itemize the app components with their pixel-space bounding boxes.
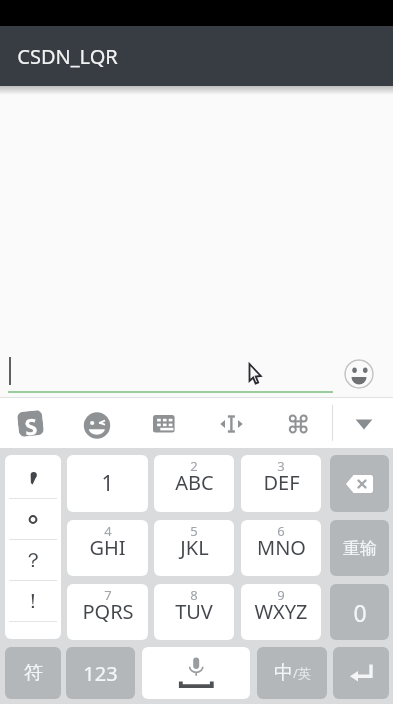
button[interactable]: 9 [241, 584, 321, 640]
staticText: ABC [175, 469, 214, 496]
staticText: JKL [180, 534, 209, 561]
button[interactable] [330, 455, 389, 512]
button[interactable]: 1 [67, 455, 148, 512]
staticText: GHI [89, 534, 126, 561]
button[interactable]: 中 [257, 647, 327, 699]
staticText: WXYZ [254, 598, 308, 625]
button[interactable]: 8 [154, 584, 234, 640]
button[interactable]: 0 [330, 584, 389, 640]
button[interactable] [82, 410, 112, 440]
button[interactable] [142, 647, 250, 699]
button[interactable]: 123 [66, 647, 135, 699]
staticText: 0 [353, 597, 367, 628]
button[interactable]: S [16, 409, 44, 437]
staticText: 8 [190, 586, 198, 604]
staticText: PQRS [82, 598, 134, 625]
button[interactable]: 2 [154, 455, 234, 512]
button[interactable]: 重输 [330, 520, 389, 576]
staticText: 符 [24, 661, 43, 685]
staticText: 中 [274, 661, 293, 685]
staticText: CSDN_LQR [17, 43, 118, 70]
staticText: DEF [263, 469, 300, 496]
staticText: 123 [83, 660, 118, 687]
button[interactable]: ？ [5, 455, 61, 639]
button[interactable]: 5 [154, 520, 234, 576]
staticText: /英 [293, 664, 311, 682]
staticText: 6 [277, 522, 285, 540]
button[interactable]: 7 [67, 584, 148, 640]
staticText: ！ [23, 589, 43, 614]
button[interactable]: 3 [241, 455, 321, 512]
button[interactable] [148, 408, 180, 440]
button[interactable]: 6 [241, 520, 321, 576]
button[interactable]: 4 [67, 520, 148, 576]
staticText: 2 [190, 457, 198, 475]
staticText: 5 [190, 522, 198, 540]
staticText: 9 [277, 586, 285, 604]
button[interactable] [333, 647, 389, 699]
staticText: 3 [277, 457, 285, 475]
staticText: TUV [175, 598, 213, 625]
button[interactable] [344, 359, 374, 389]
button[interactable] [282, 408, 314, 440]
staticText: 1 [101, 469, 114, 498]
button[interactable] [349, 408, 379, 438]
button[interactable] [215, 408, 247, 440]
staticText: S [23, 410, 38, 437]
staticText: 重输 [343, 538, 377, 559]
staticText: 7 [104, 586, 112, 604]
staticText: ？ [23, 548, 43, 573]
staticText: MNO [257, 534, 306, 561]
staticText: 4 [104, 522, 112, 540]
button[interactable]: 符 [5, 647, 61, 699]
